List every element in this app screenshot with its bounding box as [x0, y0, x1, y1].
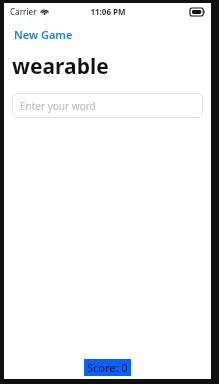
staticText: New Game [14, 27, 73, 42]
button[interactable]: New Game [12, 26, 75, 43]
button[interactable]: Score: 0 [84, 359, 131, 376]
staticText: 11:06 PM [90, 6, 126, 17]
other: Wi-Fi signal [40, 8, 49, 15]
staticText: Carrier [10, 6, 37, 17]
staticText: Enter your word [20, 99, 96, 113]
staticText: Score: 0 [87, 360, 128, 375]
button[interactable]: Enter your word [12, 93, 203, 118]
staticText: wearable [12, 52, 109, 81]
other: Battery full [190, 8, 205, 16]
